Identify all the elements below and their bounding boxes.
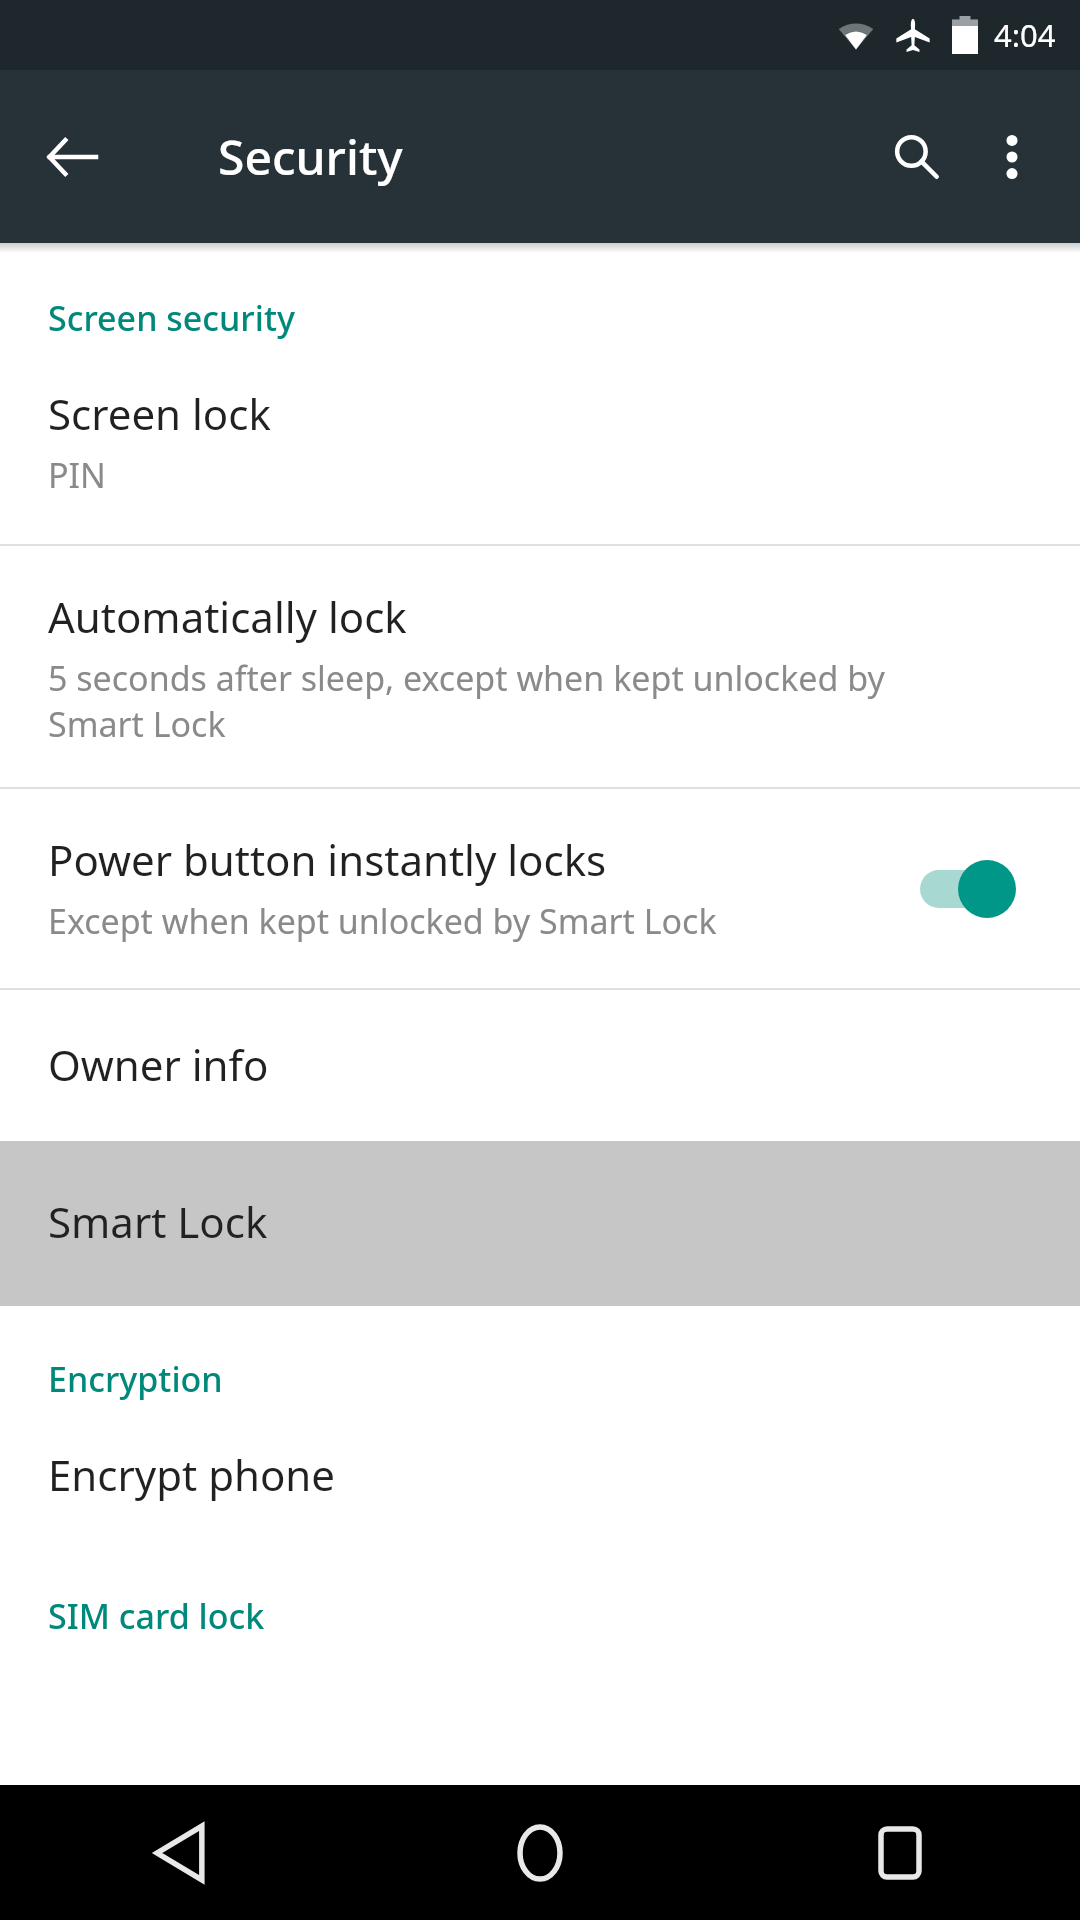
staticText: PIN [48,452,106,498]
button[interactable]: Back [0,1785,360,1920]
staticText: Screen lock [48,385,271,442]
staticText: SIM card lock [48,1593,265,1639]
button[interactable]: Encrypt phone [0,1402,1080,1549]
button[interactable]: Power button instantly locks [0,789,1080,988]
staticText: Security [218,124,403,189]
button[interactable]: Screen lock [0,341,1080,544]
staticText: Automatically lock [48,588,407,645]
staticText: Encryption [48,1356,223,1402]
button[interactable]: Back [22,107,122,207]
button[interactable]: Search [868,109,964,205]
button[interactable]: Owner info [0,990,1080,1141]
button[interactable]: More options [964,109,1060,205]
button[interactable]: Home [360,1785,720,1920]
staticText: Except when kept unlocked by Smart Lock [48,898,717,944]
staticText: 4:04 [994,14,1056,56]
button[interactable]: Power button instantly locks toggle [914,849,1024,929]
staticText: Power button instantly locks [48,831,607,888]
staticText: Owner info [48,1036,269,1093]
staticText: Smart Lock [48,1193,268,1250]
button[interactable]: Smart Lock [0,1141,1080,1306]
staticText: Encrypt phone [48,1446,335,1503]
button[interactable]: Recent apps [720,1785,1080,1920]
staticText: 5 seconds after sleep, except when kept … [48,655,885,747]
button[interactable]: Automatically lock [0,546,1080,787]
staticText: Screen security [48,295,295,341]
